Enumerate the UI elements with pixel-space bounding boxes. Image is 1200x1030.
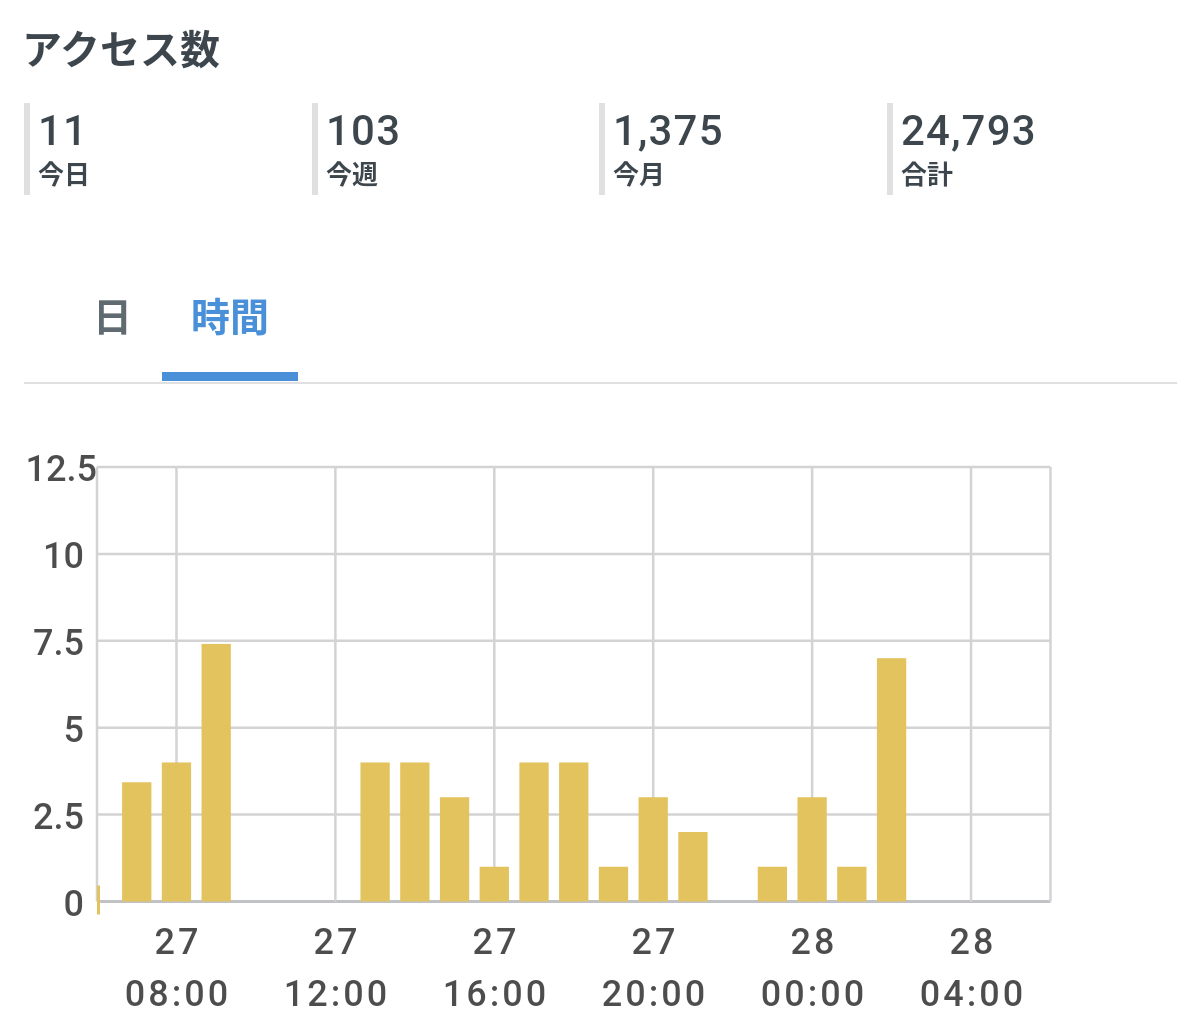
button[interactable]: 103 <box>312 103 592 195</box>
staticText: 27 <box>257 921 417 963</box>
staticText: 24,793 <box>901 106 1037 155</box>
staticText: 今日 <box>38 154 91 192</box>
staticText: 27 <box>575 921 735 963</box>
staticText: 16:00 <box>416 973 576 1015</box>
staticText: 7.5 <box>0 622 84 664</box>
staticText: 00:00 <box>734 973 894 1015</box>
staticText: 27 <box>416 921 576 963</box>
button[interactable]: 時間 <box>162 286 298 370</box>
staticText: 1,375 <box>613 106 724 155</box>
staticText: 5 <box>0 709 84 751</box>
button[interactable]: 11 <box>24 103 304 195</box>
staticText: 04:00 <box>893 973 1053 1015</box>
button[interactable]: 日 <box>45 286 181 370</box>
staticText: 0 <box>0 883 84 925</box>
staticText: 2.5 <box>0 796 84 838</box>
button[interactable]: 1,375 <box>599 103 879 195</box>
staticText: 11 <box>38 106 89 155</box>
staticText: 27 <box>98 921 258 963</box>
staticText: 12.5 <box>0 448 97 490</box>
staticText: 10 <box>0 535 84 577</box>
staticText: 日 <box>93 286 133 342</box>
staticText: 08:00 <box>98 973 258 1015</box>
staticText: 時間 <box>191 286 270 342</box>
staticText: 今週 <box>326 154 379 192</box>
staticText: 28 <box>893 921 1053 963</box>
staticText: 合計 <box>901 154 954 192</box>
staticText: 今月 <box>613 154 666 192</box>
staticText: 28 <box>734 921 894 963</box>
staticText: 103 <box>326 106 402 155</box>
staticText: アクセス数 <box>22 18 220 76</box>
staticText: 12:00 <box>257 973 417 1015</box>
button[interactable]: 24,793 <box>887 103 1167 195</box>
staticText: 20:00 <box>575 973 735 1015</box>
